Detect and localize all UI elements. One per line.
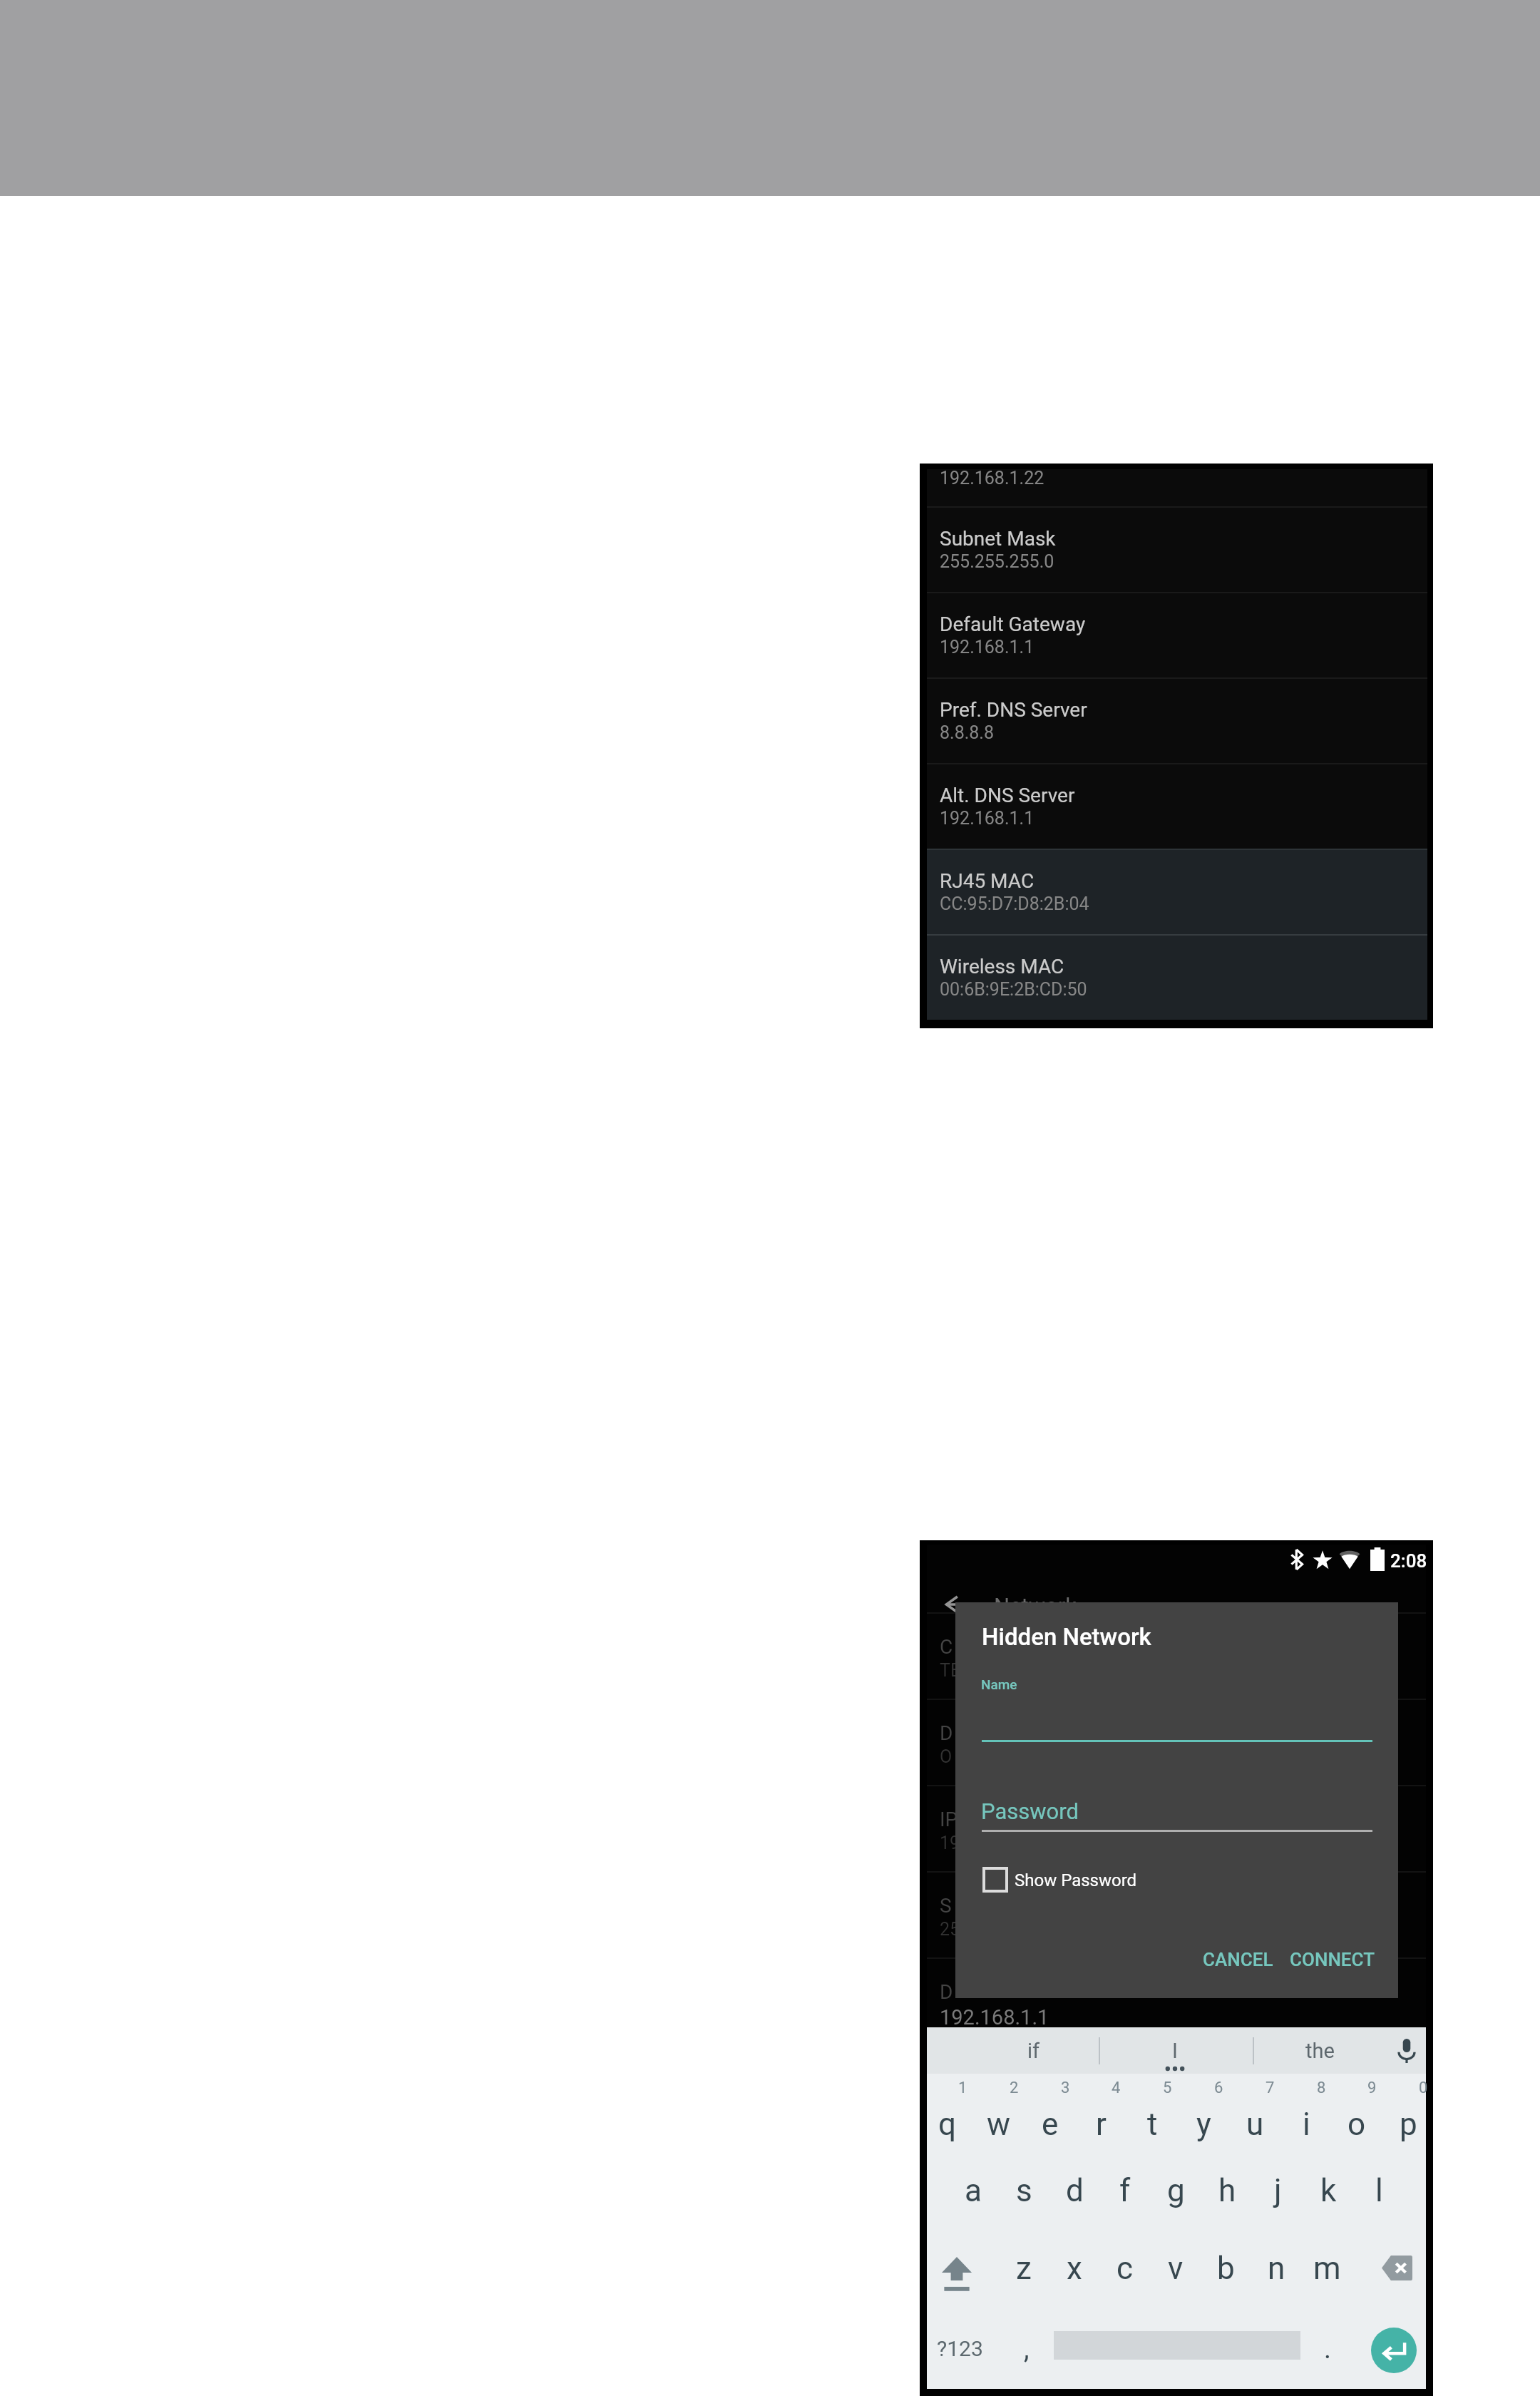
staticText: Pref. DNS Server: [940, 698, 1087, 722]
staticText: l: [1375, 2172, 1383, 2209]
button[interactable]: ,: [1008, 2307, 1045, 2389]
staticText: m: [1313, 2250, 1341, 2287]
button[interactable]: l: [1354, 2151, 1404, 2229]
staticText: 192.168.1.22: [940, 468, 1044, 488]
staticText: 8: [1317, 2079, 1326, 2097]
staticText: O: [940, 1746, 953, 1767]
staticText: RJ45 MAC: [940, 869, 1035, 893]
button[interactable]: .: [1309, 2307, 1346, 2389]
staticText: Hidden Network: [982, 1623, 1151, 1651]
staticText: D: [940, 1721, 953, 1745]
staticText: Network: [994, 1593, 1077, 1619]
button[interactable]: s: [999, 2151, 1049, 2229]
button[interactable]: z: [998, 2229, 1049, 2307]
staticText: h: [1218, 2172, 1236, 2209]
button[interactable]: h: [1202, 2151, 1252, 2229]
button[interactable]: 0: [1383, 2074, 1433, 2151]
staticText: 7: [1266, 2079, 1275, 2097]
button[interactable]: Pref. DNS Server: [927, 679, 1427, 763]
button[interactable]: Default Gateway: [927, 593, 1427, 677]
staticText: u: [1246, 2106, 1264, 2143]
button[interactable]: 4: [1076, 2074, 1126, 2151]
staticText: i: [1303, 2106, 1310, 2143]
button[interactable]: I: [1100, 2027, 1253, 2074]
staticText: D: [940, 1980, 953, 2004]
button[interactable]: Enter: [1355, 2307, 1426, 2389]
staticText: 3: [1061, 2079, 1070, 2097]
button[interactable]: CONNECT: [1285, 1943, 1379, 1976]
button[interactable]: n: [1251, 2229, 1302, 2307]
button[interactable]: j: [1253, 2151, 1303, 2229]
button[interactable]: b: [1201, 2229, 1251, 2307]
staticText: Name: [981, 1676, 1017, 1692]
button[interactable]: g: [1151, 2151, 1201, 2229]
staticText: 2: [1010, 2079, 1019, 2097]
staticText: Subnet Mask: [940, 527, 1056, 551]
staticText: 2:08: [1390, 1550, 1427, 1572]
button[interactable]: 7: [1230, 2074, 1280, 2151]
staticText: d: [1066, 2172, 1084, 2209]
button[interactable]: a: [948, 2151, 998, 2229]
staticText: C: [940, 1635, 953, 1659]
staticText: e: [1042, 2106, 1059, 2143]
button[interactable]: 5: [1127, 2074, 1177, 2151]
button[interactable]: Subnet Mask: [927, 508, 1427, 592]
staticText: Show Password: [1015, 1870, 1137, 1890]
staticText: if: [1027, 2039, 1040, 2063]
staticText: 4: [1112, 2079, 1121, 2097]
staticText: b: [1217, 2250, 1235, 2287]
button[interactable]: 2: [974, 2074, 1024, 2151]
staticText: q: [938, 2106, 957, 2143]
staticText: ?123: [937, 2336, 983, 2361]
button[interactable]: 3: [1025, 2074, 1075, 2151]
button[interactable]: 9: [1332, 2074, 1382, 2151]
staticText: 1: [958, 2079, 967, 2097]
staticText: ,: [1024, 2333, 1030, 2365]
button[interactable]: CANCEL: [1198, 1943, 1278, 1976]
staticText: 192.168.1.1: [940, 808, 1035, 829]
staticText: 192.168.1.1: [940, 637, 1035, 657]
staticText: n: [1268, 2250, 1285, 2287]
button[interactable]: d: [1049, 2151, 1099, 2229]
button[interactable]: c: [1099, 2229, 1150, 2307]
button[interactable]: Backspace: [1355, 2229, 1426, 2307]
button[interactable]: k: [1303, 2151, 1353, 2229]
staticText: x: [1067, 2250, 1082, 2287]
button[interactable]: Show Password: [984, 1868, 1137, 1891]
staticText: k: [1320, 2172, 1337, 2209]
staticText: z: [1016, 2250, 1032, 2287]
staticText: p: [1400, 2106, 1417, 2143]
button[interactable]: Voice input: [1387, 2027, 1426, 2074]
staticText: f: [1119, 2172, 1131, 2209]
staticText: 00:6B:9E:2B:CD:50: [940, 979, 1087, 1000]
button[interactable]: Alt. DNS Server: [927, 764, 1427, 849]
button[interactable]: v: [1150, 2229, 1201, 2307]
button[interactable]: 8: [1281, 2074, 1331, 2151]
staticText: c: [1116, 2250, 1134, 2287]
button[interactable]: RJ45 MAC: [927, 850, 1427, 934]
staticText: S: [940, 1894, 952, 1918]
staticText: 19: [940, 1833, 960, 1853]
button[interactable]: if: [927, 2027, 1099, 2074]
button[interactable]: 6: [1179, 2074, 1228, 2151]
button[interactable]: the: [1254, 2027, 1385, 2074]
staticText: Default Gateway: [940, 613, 1086, 636]
button[interactable]: x: [1049, 2229, 1099, 2307]
staticText: .: [1324, 2333, 1332, 2365]
staticText: y: [1196, 2106, 1211, 2143]
staticText: 25: [940, 1919, 960, 1940]
staticText: g: [1167, 2172, 1185, 2209]
staticText: j: [1274, 2172, 1282, 2209]
button[interactable]: f: [1100, 2151, 1150, 2229]
button[interactable]: 1: [923, 2074, 972, 2151]
staticText: IP: [940, 1808, 958, 1831]
staticText: o: [1347, 2106, 1366, 2143]
staticText: a: [965, 2172, 982, 2209]
button[interactable]: Wireless MAC: [927, 936, 1427, 1020]
button[interactable]: Space: [1045, 2307, 1309, 2389]
staticText: 6: [1214, 2079, 1223, 2097]
button[interactable]: ?123: [927, 2307, 1002, 2389]
button[interactable]: Shift: [927, 2229, 997, 2307]
staticText: Password: [981, 1798, 1079, 1824]
button[interactable]: m: [1302, 2229, 1352, 2307]
